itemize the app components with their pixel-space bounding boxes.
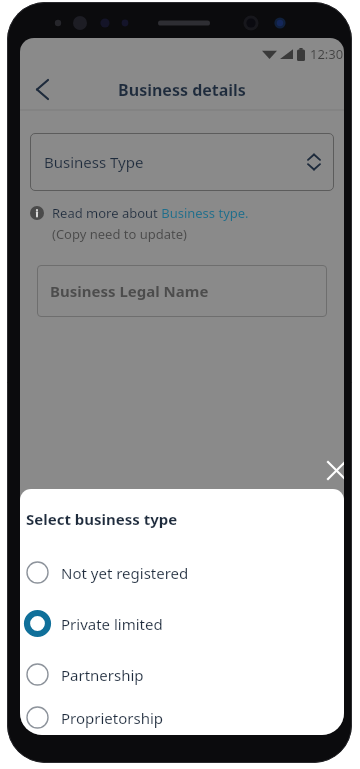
button[interactable]: Business Type <box>30 133 334 191</box>
button[interactable]: Partnership <box>20 649 344 700</box>
button[interactable]: Close <box>312 446 344 494</box>
staticText: (Copy need to update) <box>52 225 187 243</box>
staticText: Private limited <box>61 614 163 634</box>
button[interactable]: Business Legal Name <box>37 265 327 317</box>
staticText: Business Legal Name <box>50 281 209 301</box>
button[interactable]: Not yet registered <box>20 547 344 598</box>
button[interactable]: Back <box>20 70 64 109</box>
staticText: 12:30 <box>310 45 344 63</box>
button[interactable]: Private limited <box>20 598 344 649</box>
button[interactable]: Proprietorship <box>20 700 344 735</box>
staticText: Not yet registered <box>61 563 189 583</box>
staticText: Proprietorship <box>61 708 164 728</box>
staticText: Select business type <box>26 509 178 529</box>
staticText: Business Type <box>44 152 144 172</box>
staticText: Partnership <box>61 665 144 685</box>
staticText: Read more about Business type. <box>52 204 249 222</box>
staticText: Business details <box>118 79 246 101</box>
